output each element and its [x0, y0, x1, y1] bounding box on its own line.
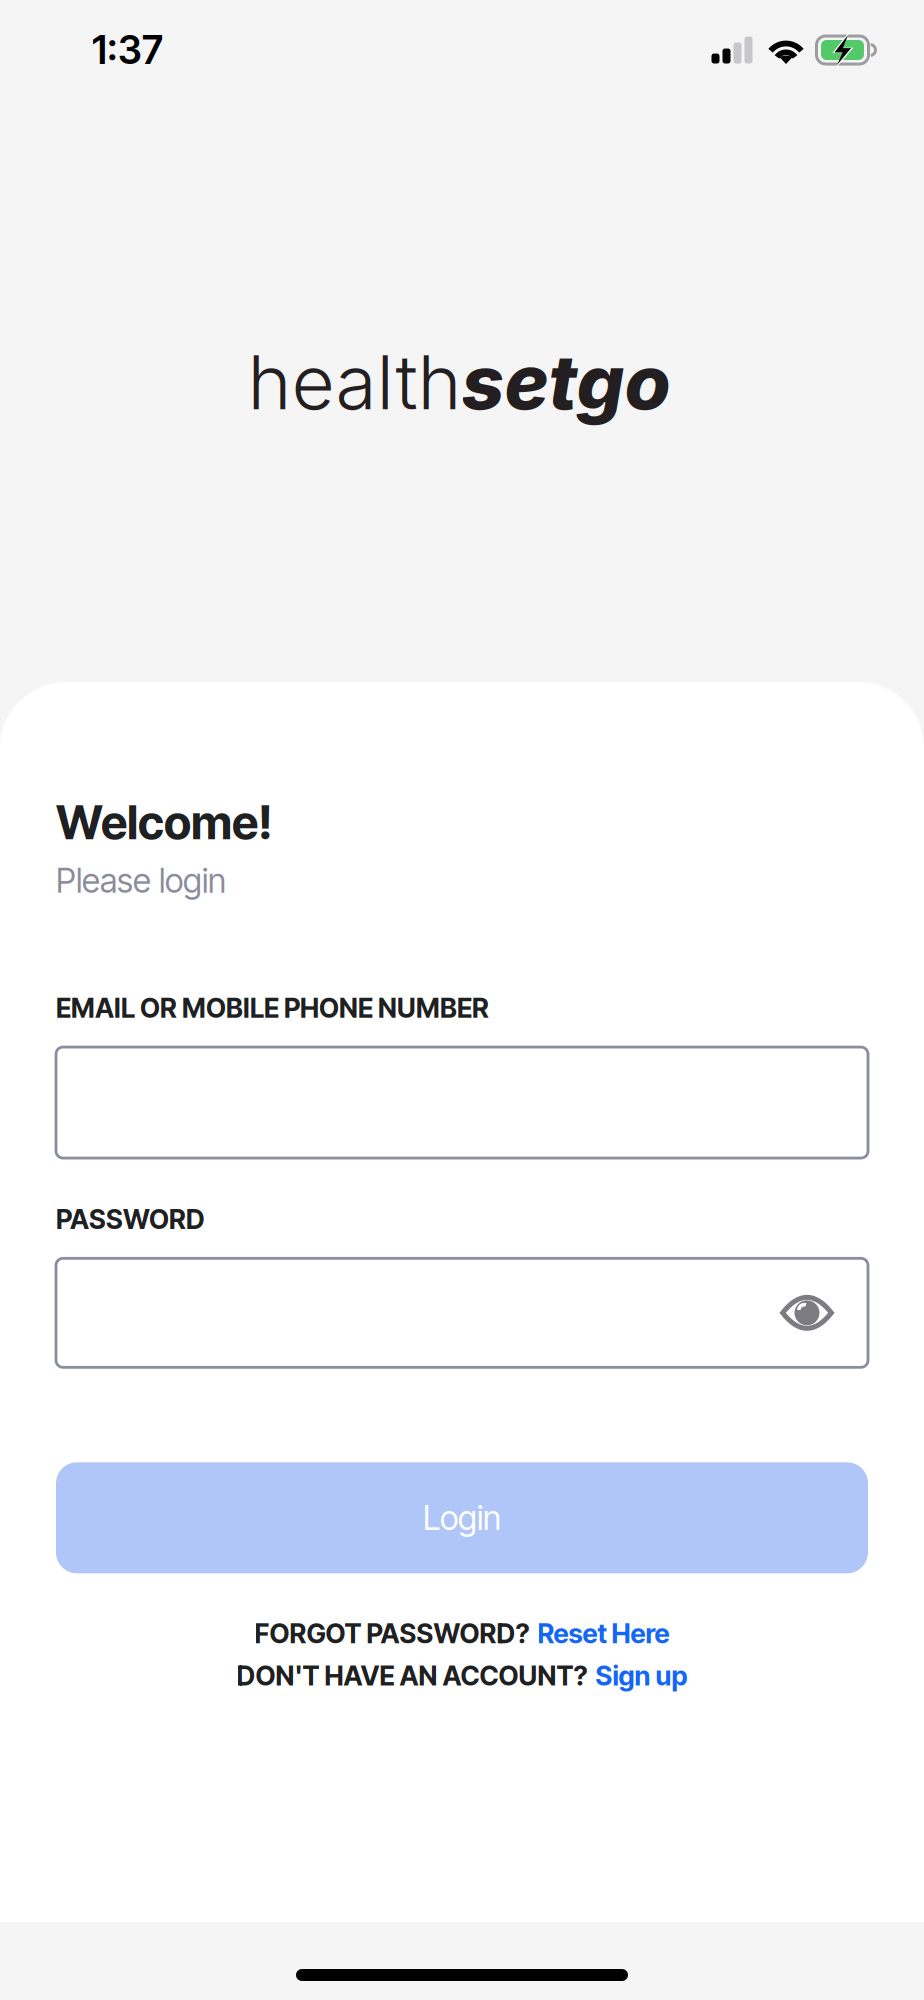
button[interactable]: Password [56, 1258, 868, 1367]
staticText: Welcome! [56, 794, 273, 850]
staticText: EMAIL OR MOBILE PHONE NUMBER [56, 992, 489, 1024]
button[interactable]: Email or mobile phone number [56, 1047, 868, 1158]
staticText: setgo [461, 337, 670, 427]
staticText: Login [423, 1498, 501, 1538]
staticText: DON'T HAVE AN ACCOUNT? [236, 1660, 587, 1692]
staticText: PASSWORD [56, 1203, 205, 1235]
button[interactable]: Login [56, 1462, 868, 1573]
staticText: Sign up [595, 1660, 687, 1692]
staticText: 1:37 [92, 27, 163, 73]
button[interactable]: Show password [763, 1276, 851, 1349]
staticText: FORGOT PASSWORD? [254, 1617, 529, 1650]
staticText: Please login [56, 860, 226, 901]
button[interactable]: DON'T HAVE AN ACCOUNT? [236, 1660, 687, 1692]
button[interactable]: FORGOT PASSWORD? [254, 1617, 669, 1650]
staticText: health [247, 337, 461, 427]
staticText: Reset Here [537, 1617, 669, 1650]
